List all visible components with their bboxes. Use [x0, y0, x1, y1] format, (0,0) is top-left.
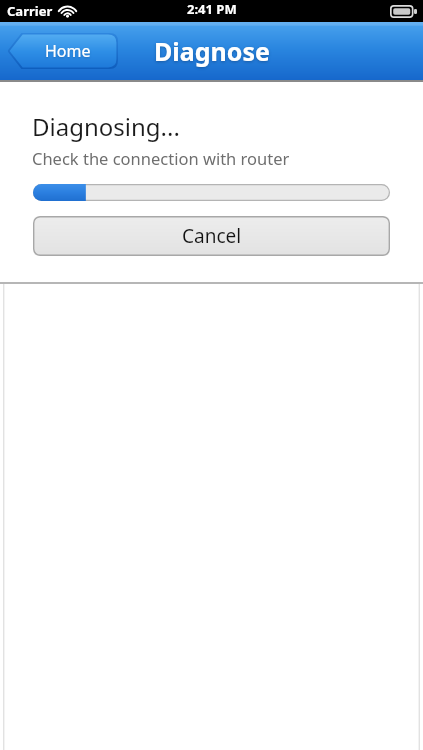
button[interactable]: Cancel [33, 216, 390, 256]
staticText: Diagnosing... [32, 110, 180, 143]
button[interactable]: Home [7, 33, 118, 69]
staticText: 2:41 PM [187, 0, 237, 18]
staticText: Check the connection with router [32, 147, 290, 169]
staticText: Cancel [182, 223, 242, 249]
staticText: Carrier [7, 2, 53, 20]
staticText: Home [45, 40, 91, 62]
staticText: Diagnose [154, 34, 270, 68]
